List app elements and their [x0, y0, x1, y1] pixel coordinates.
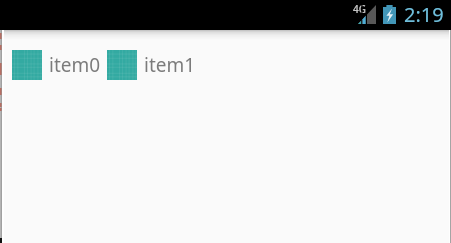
button[interactable]: item1: [107, 50, 196, 80]
staticText: 2:19: [404, 1, 444, 28]
staticText: item0: [49, 52, 101, 78]
staticText: 4G: [353, 2, 366, 16]
other: Battery charging: [383, 5, 396, 24]
button[interactable]: item0: [12, 50, 101, 80]
staticText: item1: [144, 52, 196, 78]
other: Signal strength 4G: [358, 5, 376, 24]
